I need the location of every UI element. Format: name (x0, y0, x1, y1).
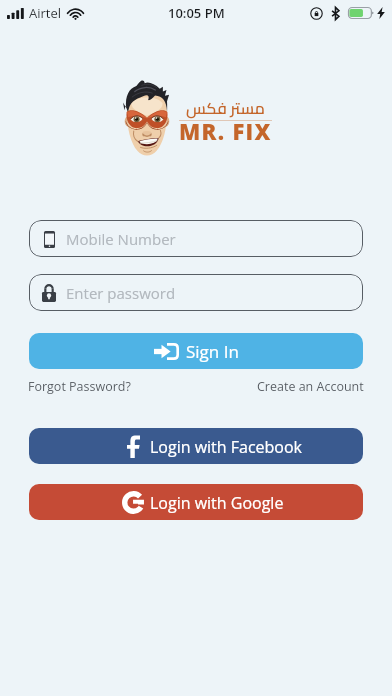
staticText: Mobile Number (66, 229, 176, 249)
staticText: Sign In (186, 340, 239, 363)
button[interactable]: Login with Facebook (29, 428, 363, 464)
staticText: Login with Facebook (150, 436, 303, 458)
button[interactable]: Enter password (29, 274, 363, 311)
button[interactable]: Forgot Password? (28, 378, 131, 395)
button[interactable]: Sign In (29, 333, 363, 369)
button[interactable]: Mobile Number (29, 220, 363, 257)
staticText: مستر فكس (186, 93, 265, 123)
staticText: Enter password (66, 283, 176, 303)
staticText: Login with Google (150, 492, 284, 514)
staticText: 10:05 PM (168, 4, 225, 22)
staticText: Airtel (29, 4, 62, 22)
button[interactable]: Login with Google (29, 484, 363, 520)
staticText: Create an Account (257, 378, 364, 395)
button[interactable]: Create an Account (257, 378, 364, 395)
staticText: Forgot Password? (28, 378, 131, 395)
staticText: MR. FIX (179, 116, 272, 146)
